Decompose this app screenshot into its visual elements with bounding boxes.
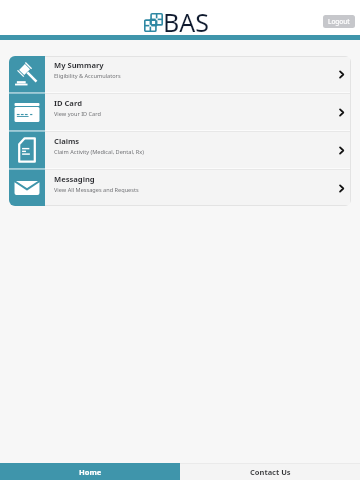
- staticText: ID Card: [54, 98, 82, 108]
- button[interactable]: Messaging: [9, 170, 351, 206]
- staticText: BAS: [163, 5, 209, 39]
- staticText: View All Messages and Requests: [54, 186, 139, 194]
- staticText: Messaging: [54, 174, 95, 184]
- staticText: My Summary: [54, 60, 104, 70]
- staticText: Claim Activity (Medical, Dental, Rx): [54, 148, 144, 156]
- button[interactable]: Home: [0, 463, 180, 480]
- staticText: Home: [79, 467, 102, 477]
- button[interactable]: ID Card: [9, 94, 351, 130]
- staticText: Claims: [54, 136, 80, 146]
- staticText: Contact Us: [250, 467, 291, 477]
- staticText: Logout: [328, 17, 350, 26]
- staticText: Eligibility & Accumulators: [54, 72, 121, 80]
- button[interactable]: Claims: [9, 132, 351, 168]
- staticText: View your ID Card: [54, 110, 101, 118]
- button[interactable]: Logout: [323, 15, 355, 28]
- button[interactable]: Contact Us: [180, 463, 360, 480]
- button[interactable]: My Summary: [9, 56, 351, 92]
